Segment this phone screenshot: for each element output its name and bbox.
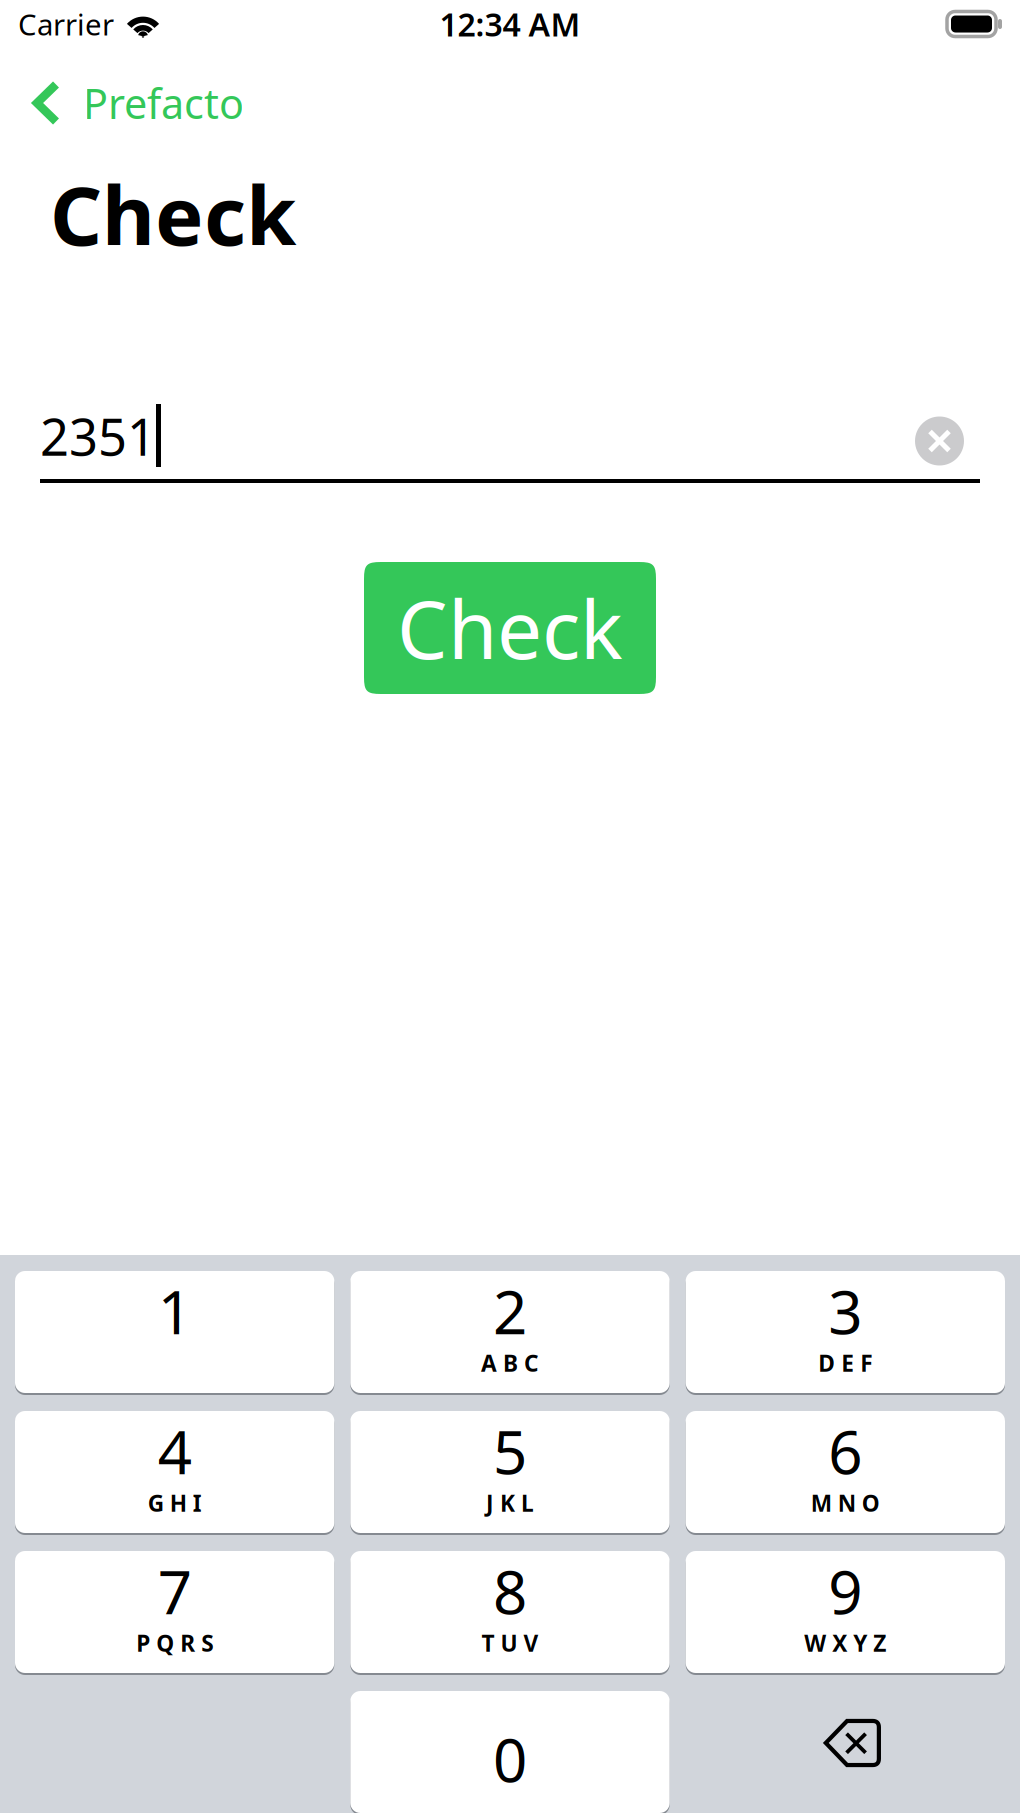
staticText: P Q R S — [136, 1628, 213, 1658]
button[interactable]: 1 — [15, 1270, 334, 1394]
staticText: W X Y Z — [804, 1628, 886, 1658]
button[interactable]: 7 — [15, 1550, 334, 1674]
staticText: G H I — [148, 1488, 202, 1518]
staticText: 6 — [828, 1411, 862, 1491]
button[interactable]: 5 — [350, 1410, 670, 1534]
staticText: 2 — [493, 1271, 527, 1351]
staticText: Check — [50, 160, 296, 268]
staticText: A B C — [481, 1348, 539, 1378]
button[interactable]: 6 — [686, 1410, 1005, 1534]
button[interactable]: Clear text — [915, 416, 964, 465]
staticText: M N O — [811, 1488, 880, 1518]
button[interactable]: 9 — [686, 1550, 1005, 1674]
staticText: 5 — [493, 1411, 527, 1491]
button[interactable]: 2 — [350, 1270, 670, 1394]
staticText: 0 — [493, 1719, 527, 1799]
button[interactable]: 3 — [686, 1270, 1005, 1394]
staticText: 9 — [828, 1551, 862, 1631]
staticText: D E F — [818, 1348, 872, 1378]
staticText: J K L — [486, 1488, 534, 1518]
staticText: 4 — [158, 1411, 192, 1491]
staticText: 1 — [158, 1271, 192, 1351]
staticText: Carrier — [18, 4, 114, 43]
staticText: 8 — [493, 1551, 527, 1631]
staticText: 3 — [828, 1271, 862, 1351]
button[interactable]: 4 — [15, 1410, 334, 1534]
staticText: 2351 — [40, 402, 156, 470]
staticText: 12:34 AM — [439, 3, 580, 45]
button[interactable]: 8 — [350, 1550, 670, 1674]
button[interactable]: 2351 — [40, 404, 915, 478]
button[interactable]: Check — [364, 562, 656, 694]
staticText: Prefacto — [83, 76, 244, 130]
staticText: T U V — [481, 1628, 538, 1658]
button[interactable]: Prefacto — [0, 75, 1020, 131]
staticText: Check — [397, 575, 623, 681]
staticText: 7 — [158, 1551, 192, 1631]
button[interactable]: 0 — [350, 1690, 670, 1813]
button[interactable]: Delete — [686, 1690, 1005, 1813]
